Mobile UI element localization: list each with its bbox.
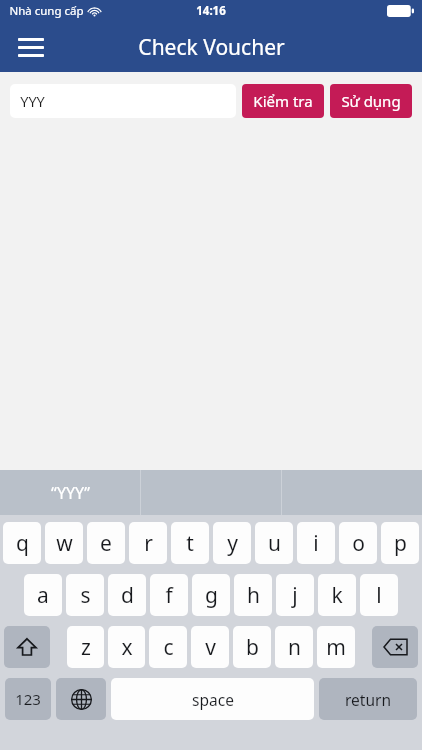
button[interactable]: w	[45, 522, 83, 564]
button[interactable]: n	[275, 626, 313, 668]
button[interactable]: x	[108, 626, 145, 668]
button[interactable]: t	[171, 522, 209, 564]
button[interactable]: r	[129, 522, 167, 564]
staticText: s	[80, 581, 91, 610]
button[interactable]: Backspace	[372, 626, 418, 668]
button[interactable]: j	[276, 574, 314, 616]
staticText: return	[345, 689, 391, 710]
staticText: p	[394, 529, 407, 558]
button[interactable]: z	[67, 626, 104, 668]
staticText: m	[326, 633, 346, 662]
button[interactable]: Sử dụng	[330, 84, 412, 118]
staticText: r	[144, 529, 153, 558]
staticText: 123	[15, 689, 41, 709]
staticText: y	[227, 529, 238, 558]
button[interactable]: b	[233, 626, 271, 668]
button[interactable]: e	[87, 522, 125, 564]
staticText: v	[205, 633, 216, 662]
staticText: h	[247, 581, 260, 610]
staticText: d	[121, 581, 134, 610]
staticText: f	[165, 581, 173, 610]
staticText: YYY	[20, 91, 45, 111]
button[interactable]: i	[297, 522, 335, 564]
button[interactable]: 123	[5, 678, 51, 720]
button[interactable]: return	[319, 678, 417, 720]
staticText: w	[56, 529, 73, 558]
staticText: u	[268, 529, 281, 558]
staticText: e	[100, 529, 112, 558]
button[interactable]: p	[381, 522, 419, 564]
staticText: t	[186, 529, 194, 558]
button[interactable]: g	[192, 574, 230, 616]
staticText: i	[313, 529, 319, 558]
staticText: j	[292, 581, 298, 610]
button[interactable]: v	[191, 626, 229, 668]
button[interactable]: k	[318, 574, 356, 616]
button[interactable]: l	[360, 574, 398, 616]
staticText: c	[163, 633, 174, 662]
staticText: k	[331, 581, 343, 610]
button[interactable]: h	[234, 574, 272, 616]
button[interactable]: s	[66, 574, 104, 616]
button[interactable]: Menu	[7, 23, 55, 71]
staticText: space	[192, 689, 234, 710]
button[interactable]: d	[108, 574, 146, 616]
button[interactable]: u	[255, 522, 293, 564]
staticText: Nhà cung cấp	[9, 3, 84, 19]
button[interactable]: Next keyboard	[56, 678, 106, 720]
staticText: z	[81, 633, 91, 662]
staticText: Check Voucher	[138, 33, 285, 62]
staticText: g	[205, 581, 218, 610]
button[interactable]: space	[111, 678, 314, 720]
button[interactable]: y	[213, 522, 251, 564]
staticText: Sử dụng	[341, 91, 401, 111]
button[interactable]: Shift	[4, 626, 50, 668]
button[interactable]: c	[149, 626, 187, 668]
button[interactable]: m	[317, 626, 355, 668]
button[interactable]: YYY	[10, 84, 236, 118]
staticText: q	[16, 529, 29, 558]
staticText: 14:16	[196, 3, 226, 19]
staticText: Kiểm tra	[253, 91, 313, 111]
button[interactable]: “YYY”	[0, 470, 140, 515]
staticText: b	[246, 633, 259, 662]
button[interactable]: f	[150, 574, 188, 616]
staticText: “YYY”	[51, 482, 90, 504]
button[interactable]: Kiểm tra	[242, 84, 324, 118]
staticText: a	[37, 581, 49, 610]
staticText: x	[121, 633, 133, 662]
staticText: o	[352, 529, 365, 558]
button[interactable]: a	[24, 574, 62, 616]
button[interactable]: q	[3, 522, 41, 564]
staticText: l	[376, 581, 382, 610]
button[interactable]: o	[339, 522, 377, 564]
staticText: n	[288, 633, 301, 662]
